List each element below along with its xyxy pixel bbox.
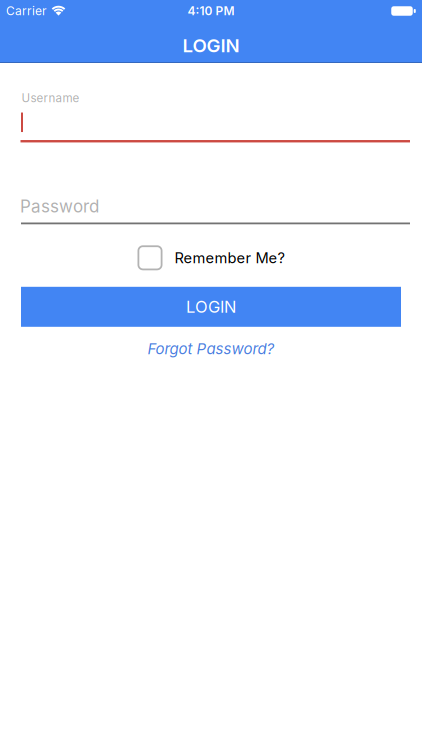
textField[interactable]: Password (20, 196, 410, 216)
button[interactable]: LOGIN (21, 287, 401, 327)
staticText: Remember Me? (174, 249, 284, 267)
staticText: Password (20, 196, 99, 216)
staticText: Username (21, 91, 79, 105)
staticText: 4:10 PM (187, 4, 234, 18)
staticText: Carrier (6, 4, 47, 18)
staticText: LOGIN (186, 297, 236, 317)
button[interactable]: Forgot Password? (147, 340, 274, 358)
staticText: LOGIN (182, 34, 239, 57)
staticText: Username (21, 112, 105, 133)
staticText: Password (20, 196, 99, 216)
staticText: Forgot Password? (147, 340, 274, 358)
textField[interactable]: Username (21, 112, 410, 133)
button[interactable]: Remember Me? (137, 245, 284, 270)
